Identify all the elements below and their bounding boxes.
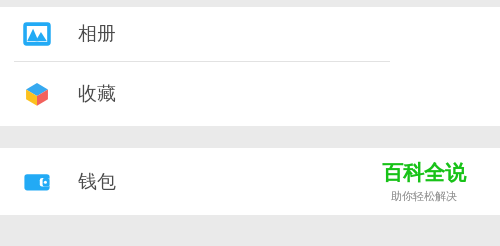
staticText: 百科全说 — [382, 160, 466, 186]
staticText: 相册 — [78, 22, 116, 46]
staticText: 助你轻松解决 — [391, 189, 457, 203]
staticText: 钱包 — [78, 170, 116, 194]
other: Album — [22, 19, 52, 49]
staticText: 收藏 — [78, 82, 116, 106]
other: Favorites — [22, 79, 52, 109]
button[interactable]: Wallet — [0, 148, 500, 215]
button[interactable]: Album — [0, 7, 500, 61]
other: Wallet — [22, 167, 52, 197]
button[interactable]: Favorites — [0, 62, 500, 126]
